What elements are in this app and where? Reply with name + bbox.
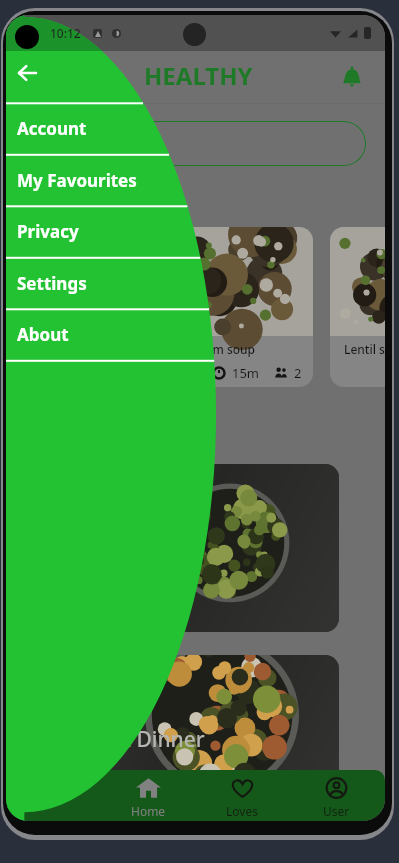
button[interactable]: Breakfast (23, 464, 339, 632)
staticText: About (17, 323, 69, 346)
button[interactable]: User (289, 770, 383, 821)
button[interactable]: Notifications (335, 60, 369, 94)
button[interactable]: Lunch & Dinner (23, 655, 339, 821)
staticText: Lentil salad (344, 341, 385, 357)
button[interactable]: Lentil salad (330, 227, 385, 387)
staticText: Account (17, 117, 87, 140)
staticText: My Favourites (17, 169, 137, 192)
button[interactable]: Back (7, 53, 47, 93)
button[interactable]: Settings (6, 257, 176, 309)
staticText: User (323, 803, 350, 819)
staticText: Settings (17, 272, 87, 295)
button[interactable]: Home (102, 770, 195, 821)
button[interactable]: Mushroom soup (147, 227, 313, 387)
button[interactable]: Account (6, 102, 176, 154)
staticText: Mushroom soup (161, 341, 256, 357)
staticText: 10:12 (50, 25, 81, 41)
staticText: 15m (232, 364, 260, 382)
button[interactable]: My Favourites (6, 154, 176, 206)
staticText: Privacy (17, 220, 79, 243)
staticText: HEALTHY (144, 59, 253, 92)
staticText: 2 (294, 364, 302, 382)
button[interactable]: Privacy (6, 205, 176, 257)
button[interactable]: Loves (195, 770, 289, 821)
staticText: Lunch & Dinner (49, 725, 205, 754)
staticText: Home (131, 803, 166, 819)
button[interactable] (26, 121, 366, 166)
button[interactable]: About (6, 308, 176, 360)
staticText: Loves (226, 803, 258, 819)
